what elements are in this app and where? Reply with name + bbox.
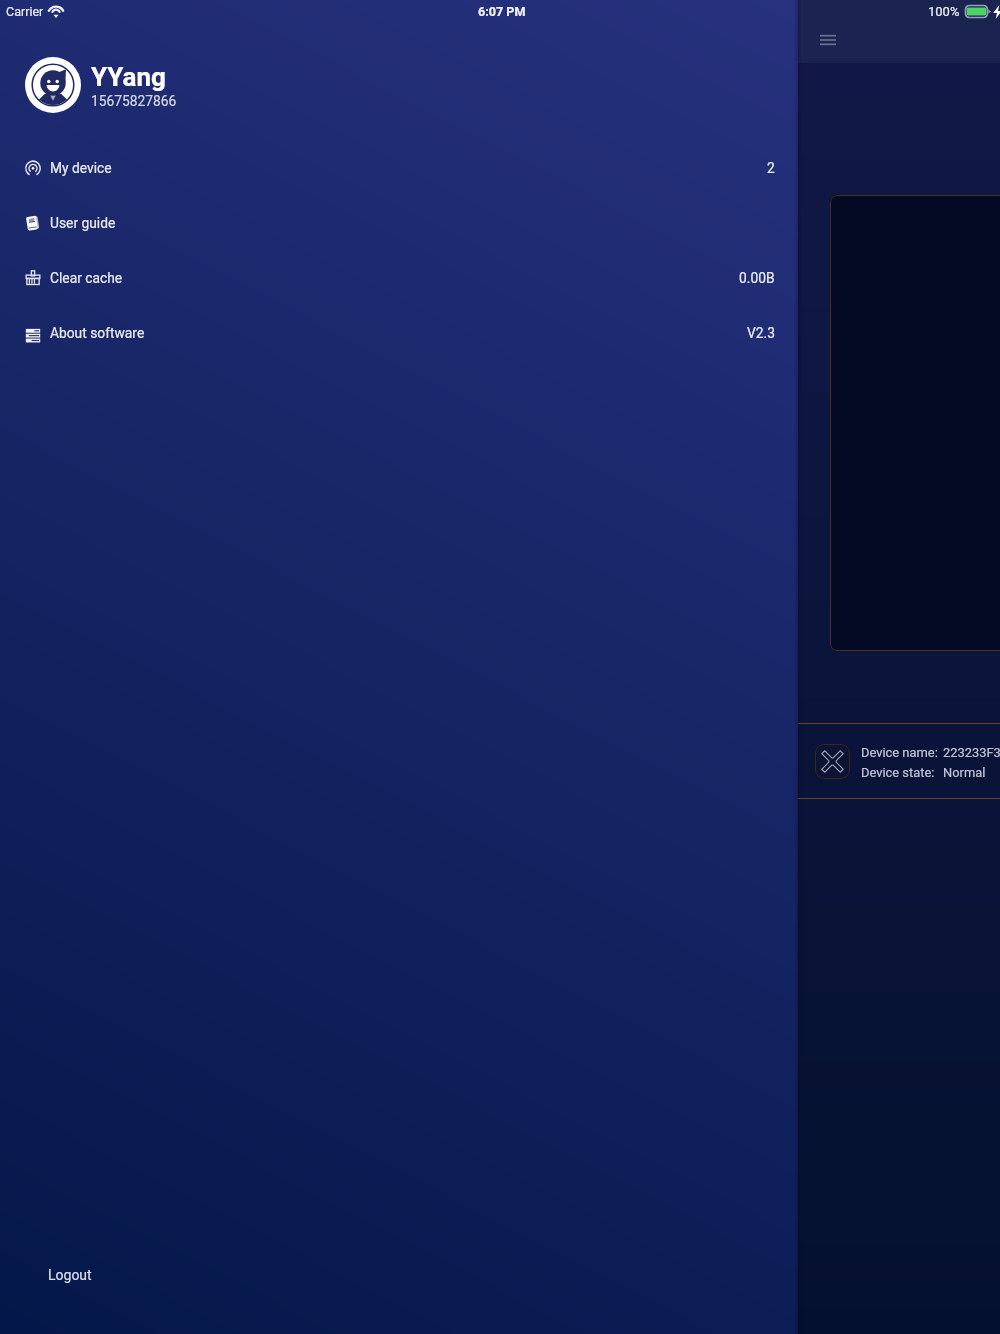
staticText: YYang: [91, 62, 166, 92]
staticText: Carrier: [6, 4, 44, 19]
staticText: About software: [50, 325, 145, 341]
staticText: 223233F31: [943, 745, 1000, 760]
staticText: Logout: [48, 1267, 92, 1283]
button[interactable]: Device name:: [798, 724, 1000, 798]
staticText: My device: [50, 160, 112, 176]
staticText: 15675827866: [91, 93, 177, 109]
button[interactable]: Logout: [0, 1255, 798, 1295]
staticText: Normal: [943, 765, 986, 780]
button[interactable]: YYang: [25, 57, 798, 113]
staticText: Clear cache: [50, 270, 123, 286]
staticText: Device name:: [861, 745, 938, 760]
button[interactable]: User guide: [0, 195, 798, 250]
staticText: 6:07 PM: [478, 4, 526, 19]
button[interactable]: About software: [0, 305, 798, 360]
button[interactable]: My device: [0, 140, 798, 195]
staticText: 100%: [928, 4, 960, 19]
staticText: User guide: [50, 215, 116, 231]
button[interactable]: Clear cache: [0, 250, 798, 305]
staticText: V2.3: [747, 325, 775, 341]
staticText: Device state:: [861, 765, 935, 780]
staticText: 0.00B: [739, 270, 775, 286]
button[interactable]: Open navigation menu: [815, 27, 841, 53]
staticText: 2: [767, 160, 775, 176]
